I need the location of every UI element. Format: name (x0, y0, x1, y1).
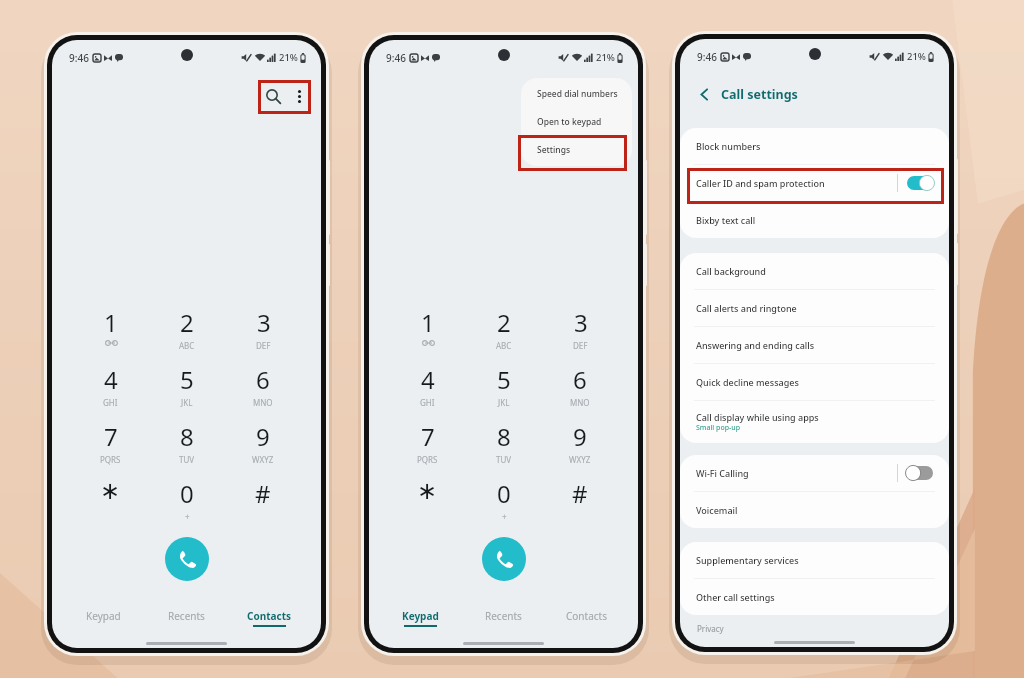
button[interactable]: Recents (462, 609, 545, 635)
button[interactable]: Wi-Fi Calling (907, 464, 933, 482)
button[interactable]: Recents (145, 609, 228, 635)
staticText: Privacy (697, 623, 724, 634)
button[interactable]: Quick decline messages (680, 364, 949, 400)
staticText: Quick decline messages (696, 376, 799, 388)
staticText: ABC (179, 340, 195, 351)
button[interactable]: 0 (466, 477, 542, 534)
staticText: 9:46 (69, 51, 89, 65)
button[interactable]: 6 (542, 363, 618, 420)
button[interactable]: 2 (466, 306, 542, 363)
staticText: + (185, 511, 190, 522)
staticText: ∗ (417, 477, 438, 505)
button[interactable]: Caller ID and spam protection (907, 174, 933, 192)
button[interactable]: Supplementary services (680, 542, 949, 578)
button[interactable]: Wi-Fi Calling (680, 455, 949, 491)
button[interactable]: Other call settings (680, 579, 949, 615)
staticText: TUV (179, 454, 195, 465)
staticText: ∗ (100, 477, 121, 505)
staticText: Recents (168, 609, 205, 623)
button[interactable]: Bixby text call (680, 202, 949, 238)
button[interactable]: Call (482, 537, 526, 581)
staticText: 8 (497, 420, 511, 453)
button[interactable]: 6 (225, 363, 301, 420)
button[interactable]: ∗ (72, 477, 149, 534)
button[interactable]: Contacts (545, 609, 628, 635)
button[interactable]: Search (576, 82, 604, 110)
staticText: 5 (497, 363, 511, 396)
staticText: 21% (279, 51, 298, 64)
staticText: 1 (421, 306, 435, 339)
staticText: GHI (103, 397, 118, 408)
staticText: 9:46 (386, 51, 406, 65)
button[interactable]: 3 (225, 306, 301, 363)
staticText: WXYZ (569, 454, 591, 465)
button[interactable]: 1 (72, 306, 149, 363)
button[interactable]: Keypad (379, 609, 462, 635)
button[interactable]: Call alerts and ringtone (680, 290, 949, 326)
button[interactable]: 4 (389, 363, 466, 420)
staticText: GHI (420, 397, 435, 408)
button[interactable]: Call background (680, 253, 949, 289)
button[interactable]: Open to keypad (521, 108, 632, 136)
button[interactable]: # (542, 477, 618, 534)
button[interactable]: Block numbers (680, 128, 949, 164)
staticText: 3 (574, 306, 588, 339)
button[interactable]: 0 (149, 477, 225, 534)
staticText: 6 (573, 363, 587, 396)
button[interactable]: 5 (149, 363, 225, 420)
staticText: 8 (180, 420, 194, 453)
staticText: 7 (104, 420, 118, 453)
button[interactable]: Speed dial numbers (521, 80, 632, 108)
staticText: Other call settings (696, 591, 775, 603)
staticText: Call settings (721, 86, 798, 103)
button[interactable]: Contacts (228, 609, 311, 635)
button[interactable]: # (225, 477, 301, 534)
staticText: Block numbers (696, 140, 761, 152)
button[interactable]: 2 (149, 306, 225, 363)
staticText: JKL (498, 397, 510, 408)
staticText: TUV (496, 454, 512, 465)
button[interactable]: 7 (72, 420, 149, 477)
button[interactable]: Keypad (62, 609, 145, 635)
staticText: 3 (257, 306, 271, 339)
button[interactable]: 1 (389, 306, 466, 363)
button[interactable]: Search (259, 82, 287, 110)
button[interactable]: More options (604, 84, 628, 108)
staticText: Contacts (247, 609, 292, 623)
button[interactable]: More options (287, 84, 311, 108)
staticText: + (502, 511, 507, 522)
button[interactable]: Back (694, 84, 714, 104)
button[interactable]: 9 (542, 420, 618, 477)
staticText: 2 (497, 306, 511, 339)
button[interactable]: ∗ (389, 477, 466, 534)
button[interactable]: Caller ID and spam protection (680, 165, 949, 201)
staticText: 0 (180, 477, 194, 510)
staticText: Speed dial numbers (537, 88, 618, 100)
staticText: DEF (573, 340, 588, 351)
staticText: PQRS (417, 454, 438, 465)
button[interactable]: Settings (521, 136, 632, 164)
button[interactable]: Call display while using apps (680, 401, 949, 443)
button[interactable]: Voicemail (680, 492, 949, 528)
button[interactable]: 9 (225, 420, 301, 477)
staticText: WXYZ (252, 454, 274, 465)
button[interactable]: 3 (542, 306, 618, 363)
button[interactable]: 8 (149, 420, 225, 477)
staticText: Wi-Fi Calling (696, 467, 749, 479)
staticText: Call display while using apps (696, 411, 819, 423)
staticText: Supplementary services (696, 554, 799, 566)
staticText: ABC (496, 340, 512, 351)
staticText: Call background (696, 265, 766, 277)
button[interactable]: 5 (466, 363, 542, 420)
button[interactable]: Answering and ending calls (680, 327, 949, 363)
button[interactable]: 7 (389, 420, 466, 477)
staticText: 21% (907, 50, 926, 63)
staticText: 0 (497, 477, 511, 510)
staticText: Call alerts and ringtone (696, 302, 797, 314)
button[interactable]: Call (165, 537, 209, 581)
button[interactable]: 8 (466, 420, 542, 477)
button[interactable]: 4 (72, 363, 149, 420)
staticText: Contacts (566, 609, 607, 623)
staticText: Keypad (402, 609, 439, 623)
staticText: Settings (537, 144, 571, 156)
